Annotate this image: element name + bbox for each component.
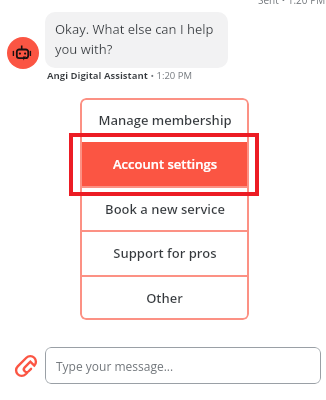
staticText: Account settings bbox=[113, 155, 217, 173]
button[interactable]: Manage membership bbox=[80, 98, 249, 142]
staticText: • 1:20 PM bbox=[148, 69, 193, 82]
button[interactable]: Other bbox=[80, 276, 249, 320]
staticText: Other bbox=[146, 289, 183, 307]
staticText: Type your message... bbox=[56, 358, 174, 374]
staticText: Sent • 1:20 PM bbox=[258, 0, 326, 7]
staticText: Book a new service bbox=[105, 200, 225, 218]
button[interactable]: Account settings bbox=[80, 142, 249, 186]
button[interactable]: Type your message... bbox=[45, 347, 321, 384]
button[interactable]: Attach file bbox=[11, 351, 41, 381]
staticText: Manage membership bbox=[98, 111, 232, 129]
staticText: Support for pros bbox=[113, 244, 217, 262]
staticText: Angi Digital Assistant bbox=[47, 69, 148, 82]
staticText: Okay. What else can I help you with? bbox=[55, 20, 217, 58]
button[interactable]: Book a new service bbox=[80, 187, 249, 231]
button[interactable]: Support for pros bbox=[80, 231, 249, 275]
